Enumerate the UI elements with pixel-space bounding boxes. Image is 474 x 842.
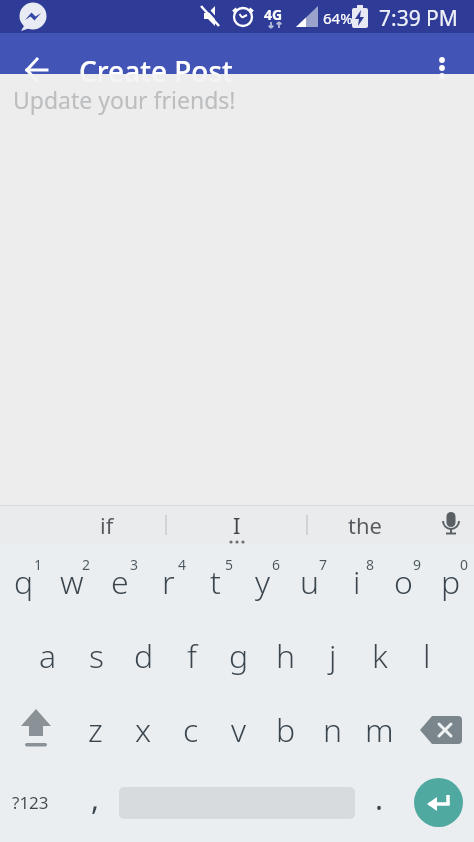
staticText: 7:39 PM bbox=[379, 4, 458, 33]
button[interactable]: m bbox=[356, 693, 403, 767]
staticText: x bbox=[135, 708, 152, 752]
button[interactable]: Update your friends! bbox=[0, 74, 474, 505]
staticText: v bbox=[231, 708, 247, 752]
staticText: 4 bbox=[178, 555, 187, 574]
staticText: 2 bbox=[82, 555, 91, 574]
button[interactable]: if bbox=[60, 505, 154, 545]
staticText: h bbox=[276, 634, 296, 678]
button[interactable] bbox=[435, 509, 467, 541]
button[interactable]: n bbox=[309, 693, 356, 767]
button[interactable]: h bbox=[262, 619, 309, 693]
button[interactable]: z bbox=[71, 693, 119, 767]
staticText: d bbox=[134, 634, 154, 678]
button[interactable]: j bbox=[309, 619, 356, 693]
staticText: 4G bbox=[264, 5, 283, 24]
staticText: Update your friends! bbox=[13, 84, 236, 115]
staticText: I bbox=[233, 510, 241, 540]
button[interactable]: c bbox=[167, 693, 215, 767]
button[interactable]: d bbox=[120, 619, 168, 693]
button[interactable]: b bbox=[262, 693, 309, 767]
button[interactable] bbox=[403, 767, 474, 842]
button[interactable]: 7 bbox=[286, 545, 333, 619]
button[interactable] bbox=[24, 56, 52, 84]
staticText: c bbox=[183, 708, 199, 752]
staticText: if bbox=[100, 510, 114, 540]
button[interactable]: 8 bbox=[333, 545, 380, 619]
staticText: i bbox=[353, 560, 361, 604]
staticText: s bbox=[89, 634, 104, 678]
button[interactable] bbox=[119, 767, 355, 842]
staticText: t bbox=[210, 560, 221, 604]
button[interactable]: the bbox=[318, 505, 412, 545]
staticText: l bbox=[423, 634, 431, 678]
button[interactable]: s bbox=[72, 619, 120, 693]
staticText: k bbox=[372, 634, 388, 678]
button[interactable]: 9 bbox=[380, 545, 427, 619]
button[interactable]: v bbox=[215, 693, 262, 767]
staticText: 6 bbox=[272, 555, 281, 574]
button[interactable] bbox=[430, 54, 454, 84]
staticText: o bbox=[394, 560, 413, 604]
staticText: 0 bbox=[460, 555, 469, 574]
staticText: n bbox=[323, 708, 343, 752]
staticText: z bbox=[88, 708, 103, 752]
button[interactable]: 2 bbox=[48, 545, 96, 619]
staticText: Create Post bbox=[79, 52, 233, 90]
button[interactable] bbox=[0, 693, 71, 767]
staticText: 64% bbox=[323, 8, 353, 28]
button[interactable]: f bbox=[168, 619, 215, 693]
staticText: q bbox=[14, 560, 34, 604]
staticText: 7 bbox=[319, 555, 328, 574]
staticText: g bbox=[229, 634, 249, 678]
staticText: 1 bbox=[34, 555, 43, 574]
button[interactable]: , bbox=[72, 767, 119, 842]
button[interactable]: 0 bbox=[427, 545, 474, 619]
staticText: b bbox=[276, 708, 296, 752]
staticText: w bbox=[60, 560, 84, 604]
button[interactable]: ?123 bbox=[0, 767, 72, 842]
staticText: 8 bbox=[366, 555, 375, 574]
staticText: f bbox=[187, 634, 197, 678]
button[interactable]: x bbox=[119, 693, 167, 767]
staticText: 9 bbox=[413, 555, 422, 574]
button[interactable]: 4 bbox=[144, 545, 192, 619]
staticText: 3 bbox=[130, 555, 139, 574]
button[interactable]: 1 bbox=[0, 545, 48, 619]
staticText: y bbox=[255, 560, 271, 604]
button[interactable]: g bbox=[215, 619, 262, 693]
staticText: e bbox=[111, 560, 129, 604]
staticText: . bbox=[375, 778, 384, 819]
staticText: , bbox=[91, 778, 100, 819]
button[interactable]: l bbox=[403, 619, 450, 693]
button[interactable] bbox=[403, 693, 474, 767]
staticText: ?123 bbox=[12, 791, 49, 814]
button[interactable]: 5 bbox=[192, 545, 239, 619]
staticText: r bbox=[162, 560, 175, 604]
staticText: m bbox=[365, 708, 394, 752]
staticText: j bbox=[329, 634, 337, 678]
button[interactable]: 3 bbox=[96, 545, 144, 619]
button[interactable]: . bbox=[355, 767, 403, 842]
staticText: the bbox=[348, 510, 382, 540]
button[interactable]: k bbox=[356, 619, 403, 693]
staticText: u bbox=[300, 560, 320, 604]
button[interactable]: I bbox=[190, 505, 284, 545]
staticText: 5 bbox=[225, 555, 234, 574]
staticText: p bbox=[441, 560, 461, 604]
button[interactable]: 6 bbox=[239, 545, 286, 619]
button[interactable]: a bbox=[24, 619, 72, 693]
staticText: a bbox=[39, 634, 57, 678]
